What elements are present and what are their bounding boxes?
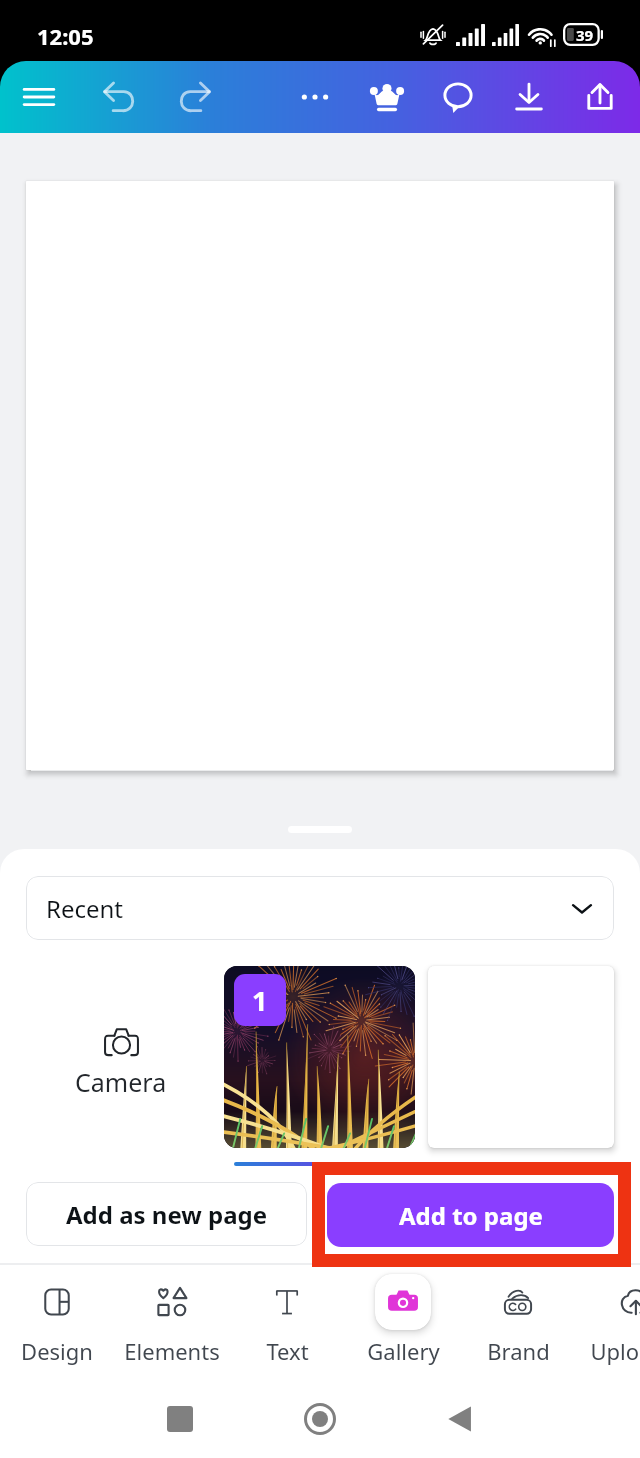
button[interactable]: Add as new page [26, 1182, 307, 1246]
button[interactable]: Home [285, 1384, 355, 1454]
button[interactable]: Share [570, 67, 630, 127]
staticText: Text [266, 1336, 309, 1366]
button[interactable]: Design [0, 1265, 114, 1380]
button[interactable]: Elements [115, 1265, 229, 1380]
button[interactable]: Undo [90, 67, 150, 127]
staticText: 12:05 [37, 21, 94, 51]
button[interactable]: Text [230, 1265, 344, 1380]
staticText: Add as new page [66, 1198, 268, 1231]
staticText: 1 [252, 982, 268, 1019]
button[interactable]: Recent [26, 876, 614, 940]
button[interactable]: 1 [224, 966, 415, 1148]
button[interactable]: Comments [428, 67, 488, 127]
staticText: Elements [124, 1336, 220, 1366]
button[interactable]: More options [285, 67, 345, 127]
staticText: Design [21, 1336, 93, 1366]
button[interactable]: Uploads [576, 1265, 640, 1380]
button[interactable]: Camera [26, 966, 216, 1148]
button[interactable]: Gallery [346, 1265, 460, 1380]
staticText: Brand [487, 1336, 550, 1366]
staticText: 39 [576, 25, 594, 45]
staticText: Uploads [590, 1336, 640, 1366]
staticText: Add to page [399, 1199, 543, 1232]
button[interactable]: Back [425, 1384, 495, 1454]
button[interactable]: Redo [164, 67, 224, 127]
button[interactable]: Canva Pro [357, 67, 417, 127]
button[interactable]: Menu [9, 67, 69, 127]
staticText: Recent [46, 892, 124, 925]
button[interactable]: Download [499, 67, 559, 127]
staticText: Gallery [367, 1336, 440, 1366]
staticText: Camera [75, 1065, 167, 1099]
button[interactable]: Brand [461, 1265, 575, 1380]
button[interactable]: Add to page [327, 1183, 614, 1247]
button[interactable]: Recent apps [145, 1384, 215, 1454]
